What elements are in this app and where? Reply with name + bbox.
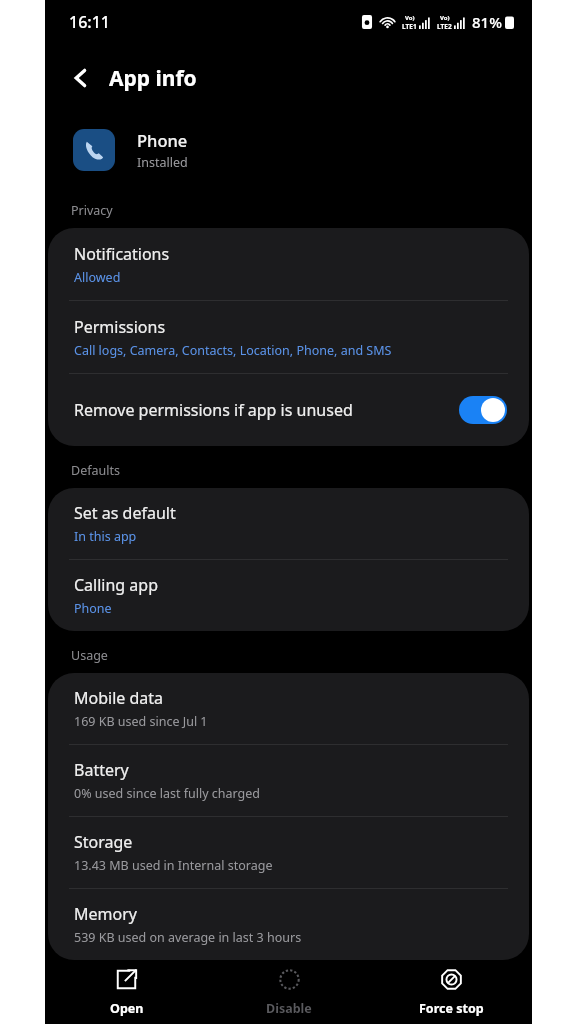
staticText: Call logs, Camera, Contacts, Location, P… [74, 342, 392, 359]
staticText: 0% used since last fully charged [74, 785, 261, 802]
staticText: LTE2 [437, 22, 452, 31]
button[interactable]: Set as default [48, 488, 529, 559]
staticText: Vo) [405, 14, 415, 22]
staticText: 169 KB used since Jul 1 [74, 713, 208, 730]
staticText: In this app [74, 528, 137, 545]
staticText: Set as default [74, 502, 176, 524]
staticText: Remove permissions if app is unused [74, 399, 459, 421]
staticText: Mobile data [74, 687, 164, 709]
staticText: Installed [137, 154, 188, 171]
staticText: Phone [137, 129, 188, 151]
staticText: Force stop [419, 1000, 484, 1017]
staticText: Usage [71, 647, 108, 664]
button[interactable]: Battery [48, 745, 529, 816]
staticText: 13.43 MB used in Internal storage [74, 857, 273, 874]
button[interactable]: Phone [45, 112, 532, 188]
staticText: Allowed [74, 269, 121, 286]
button[interactable]: Notifications [48, 228, 529, 300]
staticText: Memory [74, 903, 137, 925]
button[interactable]: Remove permissions if app is unused [48, 374, 529, 446]
button[interactable]: Storage [48, 817, 529, 888]
staticText: Privacy [71, 202, 113, 219]
staticText: 16:11 [69, 11, 110, 33]
button[interactable]: Memory [48, 889, 529, 960]
staticText: Open [110, 1000, 144, 1017]
button[interactable]: Mobile data [48, 673, 529, 744]
button[interactable]: Back [59, 56, 103, 100]
staticText: 81% [472, 12, 502, 32]
staticText: Calling app [74, 574, 159, 596]
staticText: App info [109, 64, 197, 93]
button[interactable]: Disable [208, 960, 370, 1024]
staticText: Disable [266, 1000, 312, 1017]
staticText: Permissions [74, 316, 166, 338]
button[interactable]: Permissions [48, 301, 529, 373]
staticText: Notifications [74, 243, 170, 265]
button[interactable]: Calling app [48, 560, 529, 631]
staticText: LTE1 [402, 22, 417, 31]
staticText: Defaults [71, 462, 120, 479]
staticText: Battery [74, 759, 129, 781]
button[interactable]: Force stop [370, 960, 532, 1024]
staticText: Vo) [440, 14, 450, 22]
staticText: 539 KB used on average in last 3 hours [74, 929, 302, 946]
staticText: Storage [74, 831, 133, 853]
staticText: Phone [74, 600, 112, 617]
button[interactable]: Open [45, 960, 208, 1024]
